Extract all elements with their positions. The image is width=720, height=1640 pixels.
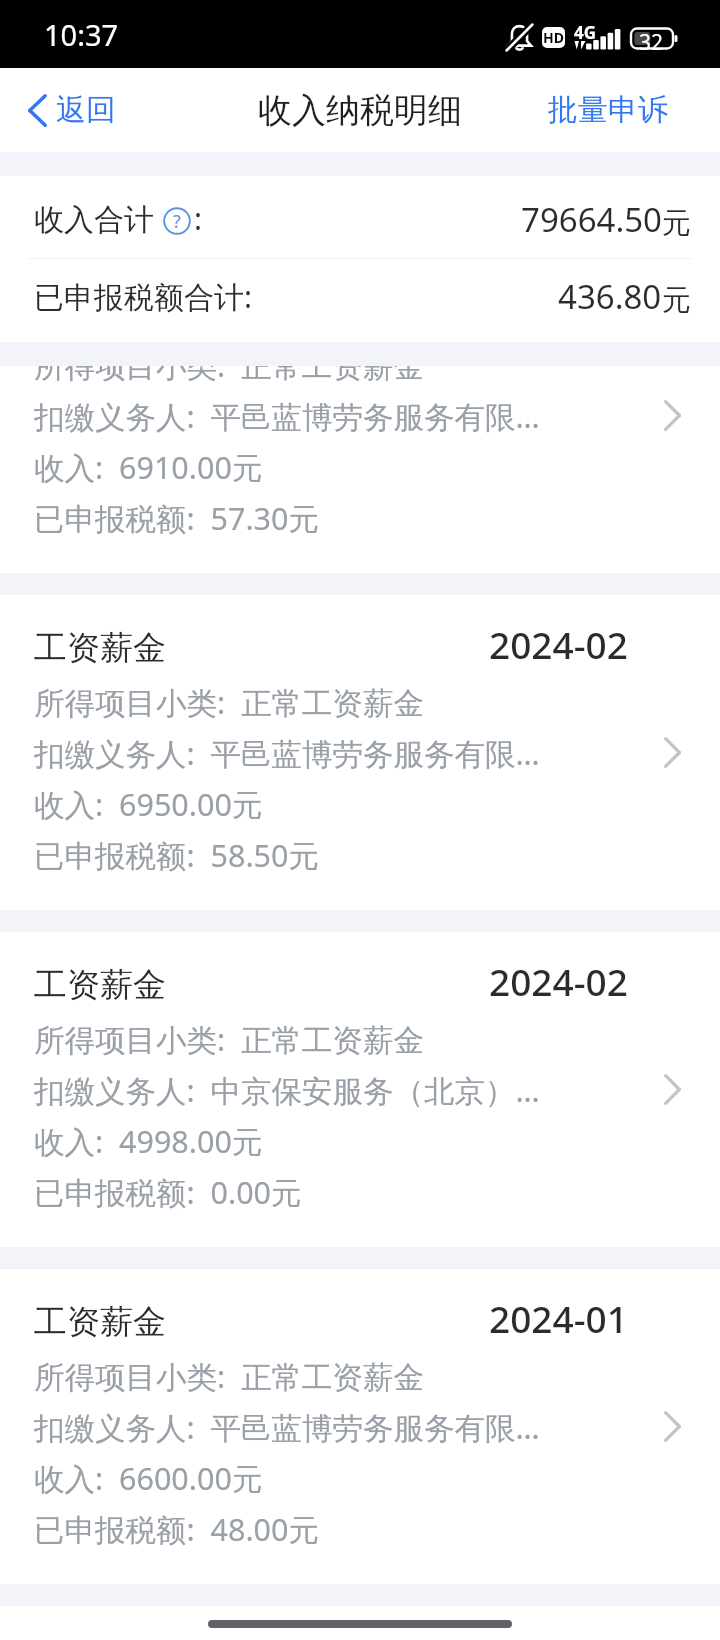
staticText: 收入合计 — [34, 201, 154, 239]
staticText: 2024-02 — [489, 619, 628, 669]
button[interactable]: 工资薪金 — [0, 595, 720, 910]
staticText: 已申报税额: 0.00元 — [34, 1171, 302, 1213]
staticText: 收入: 6950.00元 — [34, 783, 263, 825]
staticText: 收入纳税明细 — [258, 89, 462, 132]
staticText: 扣缴义务人: 平邑蓝博劳务服务有限… — [34, 1406, 540, 1448]
staticText: 所得项目小类: 正常工资薪金 — [34, 366, 425, 386]
staticText: ? — [173, 209, 181, 234]
staticText: 已申报税额合计: — [34, 276, 253, 317]
button[interactable]: 批量申诉 — [524, 77, 720, 143]
button[interactable]: 工资薪金 — [0, 366, 720, 573]
staticText: 10:37 — [44, 15, 119, 54]
other: 查看详情 — [664, 400, 681, 431]
staticText: 扣缴义务人: 中京保安服务（北京）… — [34, 1069, 540, 1111]
staticText: 收入: 6600.00元 — [34, 1457, 263, 1499]
button[interactable]: 说明 — [163, 207, 191, 235]
staticText: 32 — [639, 28, 664, 57]
staticText: 所得项目小类: 正常工资薪金 — [34, 1018, 425, 1060]
staticText: 所得项目小类: 正常工资薪金 — [34, 1355, 425, 1397]
staticText: HD — [543, 28, 564, 47]
staticText: 扣缴义务人: 平邑蓝博劳务服务有限… — [34, 732, 540, 774]
other: 返回 — [28, 94, 47, 127]
staticText: 所得项目小类: 正常工资薪金 — [34, 681, 425, 723]
staticText: : — [194, 198, 203, 239]
staticText: 收入: 6910.00元 — [34, 446, 263, 488]
staticText: 2024-02 — [489, 956, 628, 1006]
staticText: 2024-01 — [489, 1293, 628, 1343]
staticText: 79664.50 — [521, 197, 662, 242]
staticText: 工资薪金 — [34, 1301, 166, 1343]
staticText: 工资薪金 — [34, 964, 166, 1006]
staticText: 元 — [662, 205, 691, 242]
button[interactable]: 工资薪金 — [0, 1269, 720, 1584]
other: 查看详情 — [664, 1411, 681, 1442]
staticText: 436.80 — [558, 274, 662, 319]
staticText: 元 — [662, 282, 691, 319]
staticText: 返回 — [56, 91, 116, 129]
staticText: 工资薪金 — [34, 627, 166, 669]
other: 查看详情 — [664, 1074, 681, 1105]
staticText: 已申报税额: 57.30元 — [34, 497, 319, 539]
staticText: 扣缴义务人: 平邑蓝博劳务服务有限… — [34, 395, 540, 437]
staticText: 已申报税额: 48.00元 — [34, 1508, 319, 1550]
staticText: 4G — [574, 21, 597, 44]
staticText: 批量申诉 — [548, 91, 668, 129]
button[interactable]: 工资薪金 — [0, 932, 720, 1247]
staticText: 收入: 4998.00元 — [34, 1120, 263, 1162]
other: 查看详情 — [664, 737, 681, 768]
button[interactable]: 返回 — [28, 91, 126, 129]
staticText: 已申报税额: 58.50元 — [34, 834, 319, 876]
